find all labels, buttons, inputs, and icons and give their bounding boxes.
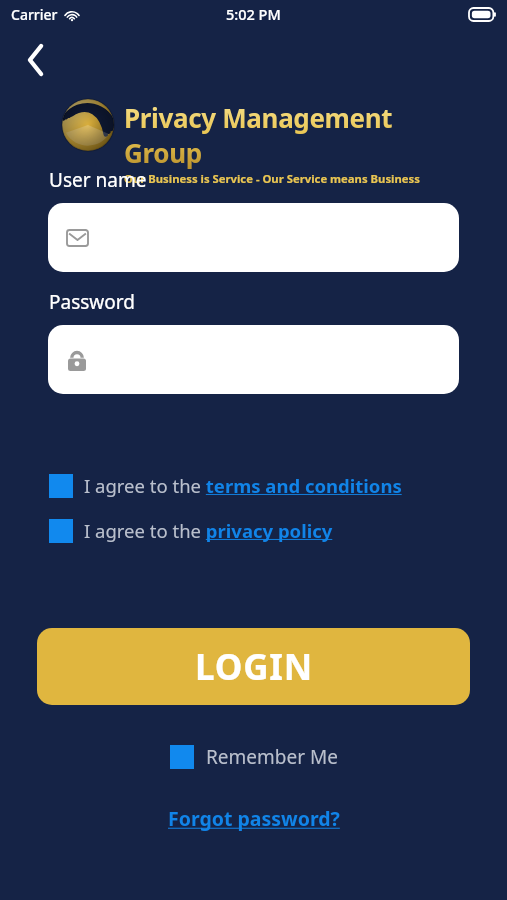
staticText: Remember Me bbox=[206, 744, 338, 770]
button[interactable]: Forgot password? bbox=[162, 802, 346, 835]
button[interactable]: Remember Me bbox=[166, 740, 342, 774]
staticText: User name bbox=[49, 167, 147, 193]
staticText: LOGIN bbox=[195, 643, 313, 691]
staticText: 5:02 PM bbox=[226, 4, 281, 24]
button[interactable]: Back bbox=[14, 38, 58, 82]
button[interactable]: I agree to the terms and conditions bbox=[49, 473, 402, 498]
button[interactable]: User name input bbox=[48, 203, 459, 272]
button[interactable]: LOGIN bbox=[37, 628, 470, 705]
staticText: I agree to the terms and conditions bbox=[84, 473, 402, 498]
staticText: Our Business is Service - Our Service me… bbox=[124, 171, 420, 186]
staticText: Password bbox=[49, 289, 135, 315]
staticText: I agree to the privacy policy bbox=[84, 518, 333, 543]
button[interactable]: Password input bbox=[48, 325, 459, 394]
staticText: Privacy Management Group bbox=[124, 100, 464, 170]
button[interactable]: I agree to the privacy policy bbox=[49, 518, 333, 543]
staticText: Carrier bbox=[11, 5, 58, 24]
